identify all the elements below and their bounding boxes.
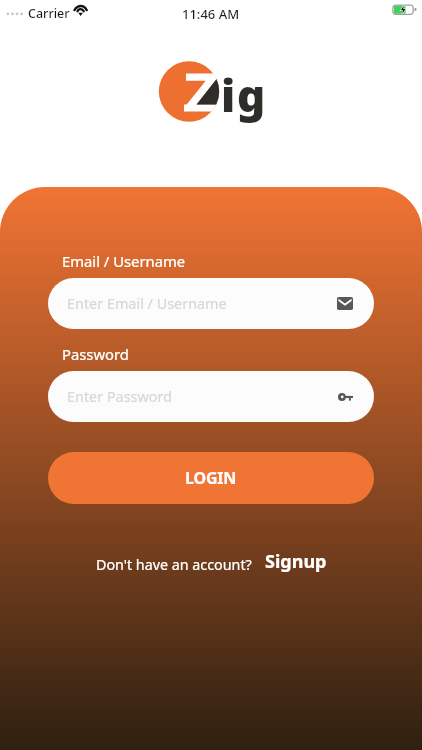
staticText: Enter Password xyxy=(67,387,172,407)
button[interactable]: Email xyxy=(48,278,374,329)
button[interactable]: LOGIN xyxy=(48,452,374,504)
staticText: Don't have an account? xyxy=(96,555,252,574)
staticText: ig xyxy=(221,65,267,125)
staticText: Carrier xyxy=(28,5,70,22)
button[interactable]: Signup xyxy=(265,549,327,574)
staticText: Enter Email / Username xyxy=(67,294,227,314)
staticText: 11:46 AM xyxy=(182,5,240,23)
button[interactable]: Password xyxy=(48,371,374,422)
staticText: Email / Username xyxy=(62,251,186,271)
staticText: LOGIN xyxy=(185,467,237,489)
staticText: Password xyxy=(62,344,129,364)
staticText: Signup xyxy=(265,549,327,574)
